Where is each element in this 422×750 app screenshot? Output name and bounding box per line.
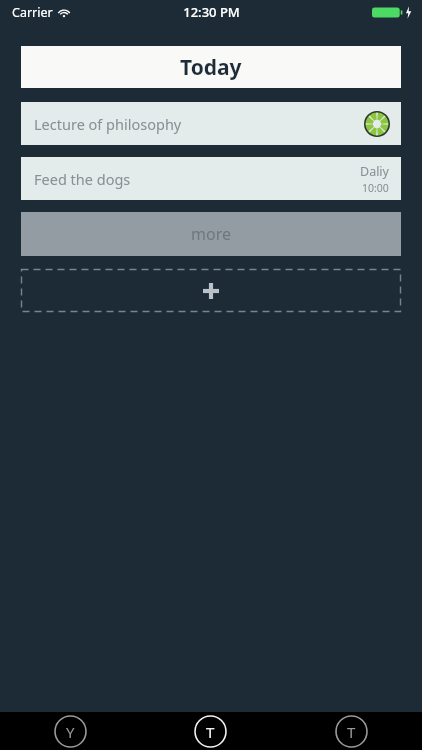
button[interactable]: Today — [21, 46, 401, 88]
staticText: 10:00 — [362, 181, 389, 195]
staticText: Lecture of philosophy — [34, 114, 364, 134]
staticText: Daliy — [360, 163, 389, 180]
button[interactable]: Add task — [21, 269, 401, 312]
button[interactable]: Feed the dogs — [21, 157, 401, 200]
staticText: 12:30 PM — [183, 3, 240, 21]
staticText: T — [206, 722, 215, 742]
button[interactable]: Yesterday — [0, 712, 140, 750]
button[interactable]: Tomorrow — [281, 712, 422, 750]
staticText: more — [191, 223, 231, 245]
staticText: Feed the dogs — [34, 169, 360, 189]
staticText: Today — [180, 53, 242, 82]
staticText: Carrier — [12, 4, 53, 21]
button[interactable]: Lecture of philosophy — [21, 102, 401, 145]
staticText: Y — [66, 722, 75, 742]
button[interactable]: Today — [140, 712, 281, 750]
staticText: T — [347, 722, 356, 742]
